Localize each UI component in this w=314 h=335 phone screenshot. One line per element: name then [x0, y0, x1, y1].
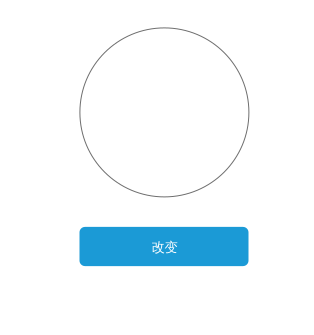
button[interactable]: 改变	[79, 227, 248, 266]
staticText: 改变	[151, 239, 177, 255]
